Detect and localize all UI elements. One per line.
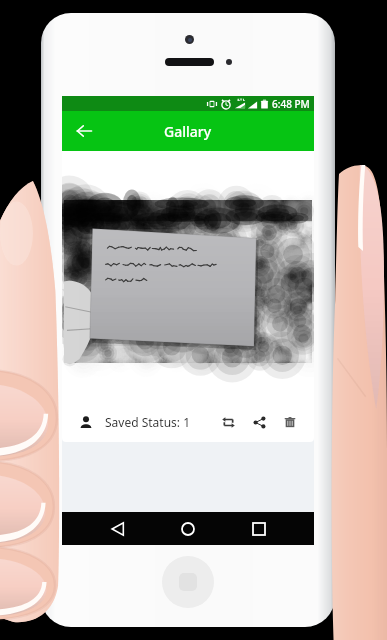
- staticText: Saved Status: 1: [105, 414, 191, 430]
- button[interactable]: Home: [173, 514, 203, 544]
- staticText: 6:48 PM: [272, 97, 310, 111]
- button[interactable]: Back: [103, 514, 133, 544]
- button[interactable]: Repost: [218, 412, 238, 432]
- button[interactable]: Back: [71, 118, 97, 144]
- button[interactable]: Recents: [244, 514, 274, 544]
- button[interactable]: Delete: [280, 412, 300, 432]
- staticText: Gallary: [164, 122, 212, 141]
- button[interactable]: Share: [249, 412, 269, 432]
